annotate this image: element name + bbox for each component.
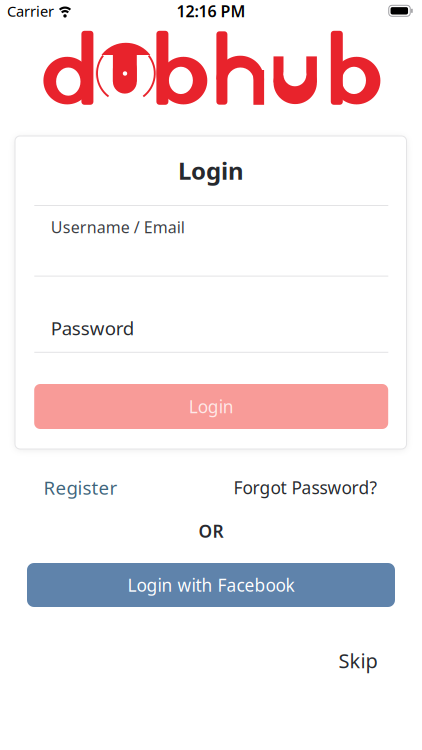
button[interactable]: Skip	[338, 647, 377, 674]
staticText: Login	[178, 155, 244, 186]
button[interactable]: Register	[44, 475, 118, 500]
button[interactable]: Login with Facebook	[27, 563, 395, 607]
button[interactable]: Forgot Password?	[233, 476, 377, 499]
staticText: 12:16 PM	[176, 0, 245, 22]
staticText: Login with Facebook	[127, 573, 294, 596]
staticText: Carrier	[7, 1, 54, 21]
staticText: Password	[51, 316, 134, 340]
staticText: Register	[44, 475, 118, 500]
staticText: Login	[189, 395, 234, 418]
button[interactable]: Login	[34, 384, 388, 429]
staticText: OR	[198, 519, 223, 542]
staticText: Username / Email	[51, 216, 185, 238]
staticText: Forgot Password?	[233, 476, 377, 499]
staticText: Skip	[338, 647, 377, 674]
